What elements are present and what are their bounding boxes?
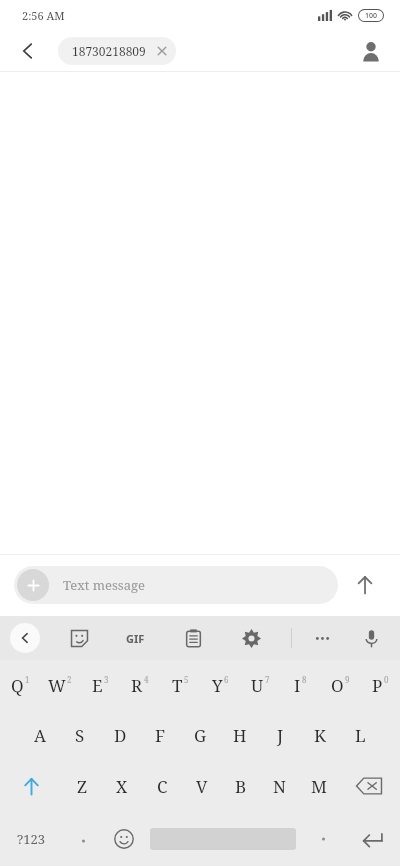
button[interactable]: 18730218809 bbox=[58, 37, 176, 65]
button[interactable]: Enter bbox=[344, 812, 400, 866]
button[interactable]: T bbox=[160, 660, 200, 710]
staticText: I bbox=[294, 674, 301, 697]
button[interactable]: Contact profile bbox=[354, 34, 388, 68]
button[interactable]: Settings bbox=[234, 621, 268, 655]
button[interactable]: L bbox=[340, 710, 380, 760]
staticText: Text message bbox=[63, 576, 145, 594]
staticText: B bbox=[235, 775, 247, 798]
button[interactable]: Backspace bbox=[338, 760, 400, 812]
staticText: Y bbox=[212, 674, 223, 697]
staticText: 18730218809 bbox=[72, 43, 146, 59]
button[interactable]: A bbox=[20, 710, 60, 760]
button[interactable]: I bbox=[280, 660, 320, 710]
button[interactable]: X bbox=[102, 760, 142, 812]
button[interactable]: H bbox=[220, 710, 260, 760]
button[interactable]: Add attachment bbox=[17, 569, 49, 601]
button[interactable]: J bbox=[260, 710, 300, 760]
staticText: GIF bbox=[126, 631, 145, 646]
staticText: 5 bbox=[184, 674, 189, 685]
button[interactable]: Back bbox=[10, 33, 46, 69]
staticText: M bbox=[311, 775, 327, 798]
button[interactable]: Y bbox=[200, 660, 240, 710]
button[interactable]: Send bbox=[344, 564, 386, 606]
staticText: A bbox=[34, 724, 46, 747]
staticText: 8 bbox=[302, 674, 307, 685]
staticText: N bbox=[273, 775, 286, 798]
button[interactable]: Collapse toolbar bbox=[10, 623, 40, 653]
staticText: W bbox=[48, 674, 66, 697]
button[interactable]: More options bbox=[305, 621, 339, 655]
staticText: F bbox=[155, 724, 166, 747]
staticText: 0 bbox=[384, 674, 389, 685]
button[interactable]: G bbox=[180, 710, 220, 760]
staticText: 4 bbox=[144, 674, 149, 685]
staticText: 3 bbox=[104, 674, 109, 685]
staticText: 7 bbox=[265, 674, 270, 685]
button[interactable]: U bbox=[240, 660, 280, 710]
button[interactable]: Shift bbox=[0, 760, 62, 812]
staticText: V bbox=[196, 775, 208, 798]
button[interactable]: Stickers bbox=[62, 621, 96, 655]
button[interactable]: V bbox=[182, 760, 221, 812]
button[interactable]: E bbox=[80, 660, 120, 710]
staticText: R bbox=[131, 674, 143, 697]
staticText: 2:56 AM bbox=[22, 8, 65, 23]
button[interactable] bbox=[62, 812, 104, 866]
button[interactable]: W bbox=[40, 660, 80, 710]
button[interactable]: Clipboard bbox=[176, 621, 210, 655]
staticText: J bbox=[277, 724, 284, 747]
button[interactable]: R bbox=[120, 660, 160, 710]
button[interactable] bbox=[302, 812, 344, 866]
staticText: Q bbox=[11, 674, 24, 697]
staticText: O bbox=[331, 674, 344, 697]
button[interactable]: Z bbox=[62, 760, 102, 812]
button[interactable]: M bbox=[299, 760, 338, 812]
staticText: 9 bbox=[345, 674, 350, 685]
button[interactable]: K bbox=[300, 710, 340, 760]
staticText: 100 bbox=[365, 11, 378, 21]
button[interactable]: C bbox=[142, 760, 182, 812]
button[interactable]: Q bbox=[0, 660, 40, 710]
staticText: C bbox=[157, 775, 168, 798]
staticText: 2 bbox=[67, 674, 72, 685]
staticText: E bbox=[92, 674, 103, 697]
staticText: Z bbox=[77, 775, 88, 798]
staticText: K bbox=[314, 724, 326, 747]
button[interactable]: B bbox=[221, 760, 260, 812]
staticText: T bbox=[172, 674, 183, 697]
staticText: 6 bbox=[224, 674, 229, 685]
button[interactable]: O bbox=[320, 660, 360, 710]
staticText: X bbox=[116, 775, 128, 798]
staticText: U bbox=[251, 674, 264, 697]
button[interactable]: GIF bbox=[118, 621, 152, 655]
staticText: 1 bbox=[25, 674, 30, 685]
staticText: ?123 bbox=[17, 830, 45, 848]
button[interactable]: N bbox=[260, 760, 299, 812]
button[interactable]: P bbox=[360, 660, 400, 710]
button[interactable]: Emoji bbox=[104, 812, 144, 866]
staticText: P bbox=[372, 674, 383, 697]
staticText: G bbox=[194, 724, 207, 747]
staticText: D bbox=[114, 724, 127, 747]
staticText: S bbox=[75, 724, 85, 747]
button[interactable]: F bbox=[140, 710, 180, 760]
button[interactable]: S bbox=[60, 710, 100, 760]
staticText: H bbox=[233, 724, 247, 747]
staticText: L bbox=[355, 724, 366, 747]
button[interactable]: Voice input bbox=[354, 621, 388, 655]
button[interactable]: Add attachment bbox=[14, 566, 338, 604]
button[interactable]: ?123 bbox=[0, 812, 62, 866]
button[interactable]: D bbox=[100, 710, 140, 760]
